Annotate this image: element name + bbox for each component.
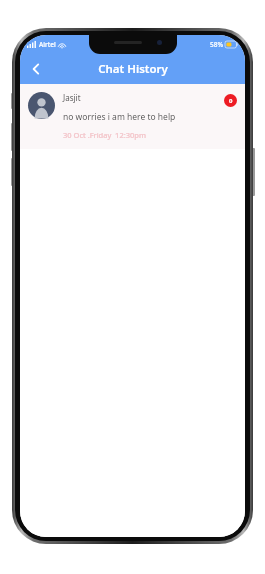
staticText: 58% (210, 40, 223, 49)
staticText: Jasjit (63, 92, 81, 103)
button[interactable]: Jasjit (20, 84, 245, 149)
button[interactable]: Back (23, 56, 49, 82)
staticText: 0 (229, 97, 233, 105)
button[interactable]: Unread count (224, 94, 237, 107)
staticText: no worries i am here to help (63, 111, 176, 123)
staticText: 30 Oct .Friday 12:30pm (63, 130, 146, 140)
staticText: Airtel (39, 40, 56, 49)
staticText: Chat History (98, 61, 168, 77)
